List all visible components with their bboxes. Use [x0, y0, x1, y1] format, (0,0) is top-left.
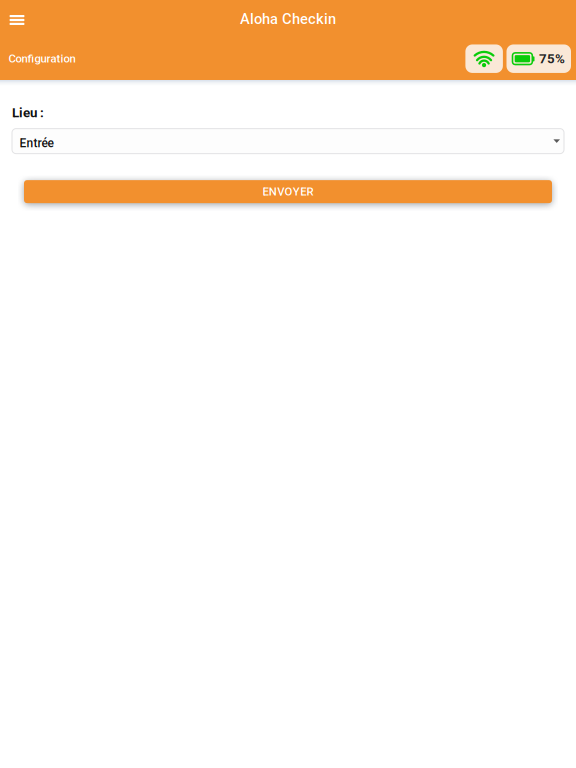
button[interactable]: Battery 75 percent: [506, 44, 571, 73]
button[interactable]: Menu: [2, 5, 32, 35]
staticText: Configuration: [8, 52, 75, 65]
button[interactable]: Wi-Fi connected: [465, 44, 503, 73]
button[interactable]: Entrée: [0, 121, 576, 154]
staticText: Entrée: [19, 136, 53, 150]
staticText: ENVOYER: [262, 185, 314, 198]
staticText: 75%: [539, 51, 565, 66]
button[interactable]: ENVOYER: [0, 154, 576, 203]
staticText: Aloha Checkin: [240, 10, 336, 28]
staticText: Lieu :: [12, 105, 44, 121]
